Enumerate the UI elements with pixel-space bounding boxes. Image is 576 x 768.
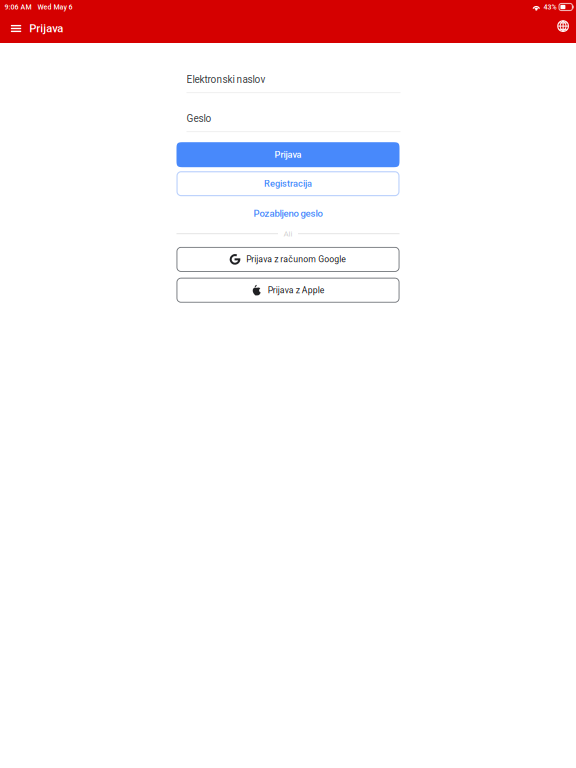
button[interactable]: Prijava xyxy=(176,142,399,167)
staticText: Wed May 6 xyxy=(37,3,72,11)
button[interactable]: Prijava z Apple xyxy=(176,278,399,303)
staticText: Ali xyxy=(283,229,292,238)
staticText: Prijava xyxy=(29,22,63,35)
button[interactable]: Change language xyxy=(554,14,573,43)
staticText: Elektronski naslov xyxy=(186,74,265,85)
staticText: Prijava xyxy=(274,149,301,160)
button[interactable]: Menu xyxy=(3,14,29,43)
button[interactable]: Pozabljeno geslo xyxy=(176,205,399,222)
staticText: 9:06 AM xyxy=(4,3,31,11)
staticText: Prijava z računom Google xyxy=(246,254,346,264)
staticText: Pozabljeno geslo xyxy=(253,208,322,219)
staticText: Registracija xyxy=(264,178,312,189)
button[interactable]: Prijava z računom Google xyxy=(176,247,399,272)
button[interactable]: Registracija xyxy=(176,171,399,196)
staticText: Geslo xyxy=(186,113,211,124)
staticText: 43% xyxy=(543,3,556,11)
staticText: Prijava z Apple xyxy=(268,285,325,295)
